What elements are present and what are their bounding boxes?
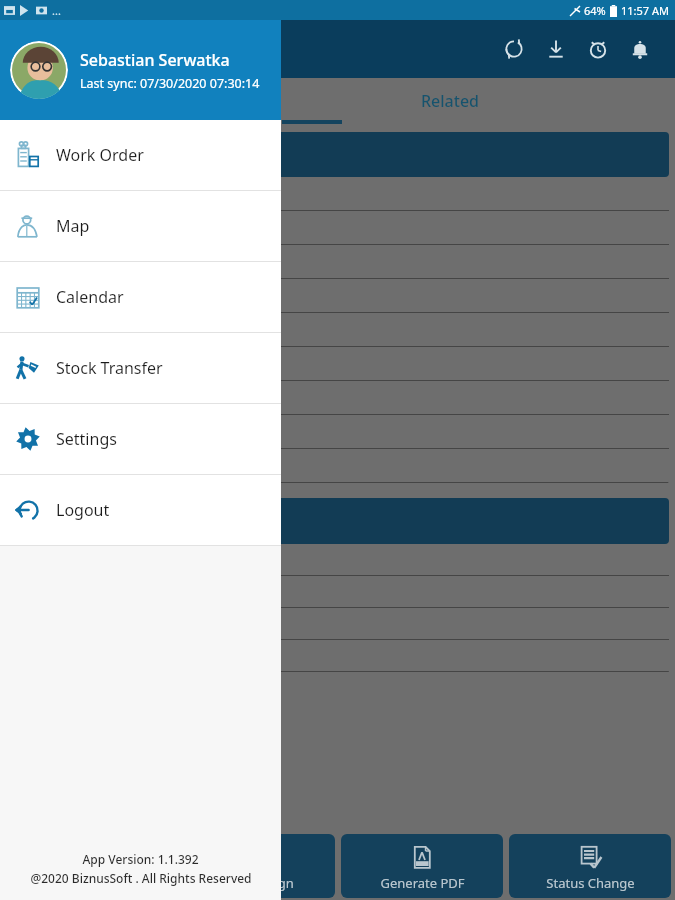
staticText: Status Change	[546, 874, 635, 892]
staticText: Stock Transfer	[56, 357, 163, 379]
button[interactable]: Status Change	[509, 834, 671, 898]
staticText: Related	[421, 90, 480, 112]
staticText: Calendar	[56, 286, 124, 308]
button[interactable]: Alarm	[577, 28, 619, 70]
staticText: 11:57 AM	[621, 3, 669, 18]
staticText: Logout	[56, 499, 110, 521]
button[interactable]: Notifications	[619, 28, 661, 70]
button[interactable]: Download	[535, 28, 577, 70]
staticText: Sebastian Serwatka	[80, 49, 230, 71]
staticText: Generate PDF	[380, 874, 465, 892]
staticText: Normal	[12, 389, 62, 408]
button[interactable]: Map	[0, 191, 281, 261]
staticText: Image	[66, 874, 106, 892]
button[interactable]: Image	[4, 834, 167, 898]
staticText: WO-00000217	[12, 185, 105, 204]
staticText: 64%	[584, 3, 606, 18]
staticText: ...	[52, 3, 61, 18]
button[interactable]: Generate PDF	[341, 834, 503, 898]
button[interactable]: Calendar	[0, 262, 281, 332]
staticText: ABC Foundry	[12, 219, 98, 238]
staticText: App Version: 1.1.392	[82, 851, 199, 867]
staticText: @2020 BiznusSoft . All Rights Reserved	[30, 870, 252, 886]
staticText: Capture Sign	[215, 874, 294, 892]
staticText: Map	[56, 215, 90, 237]
button[interactable]: Sebastian Serwatka	[0, 20, 281, 120]
button[interactable]: Work Order	[0, 120, 281, 190]
button[interactable]: Sync	[493, 28, 535, 70]
staticText: Repair unit for oil leak	[12, 457, 157, 476]
staticText: Last sync: 07/30/2020 07:30:14	[80, 75, 260, 92]
button[interactable]: Logout	[0, 475, 281, 545]
button[interactable]: Capture Sign	[173, 834, 335, 898]
button[interactable]: Settings	[0, 404, 281, 474]
staticText: Work Order	[56, 144, 144, 166]
button[interactable]: Stock Transfer	[0, 333, 281, 403]
staticText: Settings	[56, 428, 117, 450]
